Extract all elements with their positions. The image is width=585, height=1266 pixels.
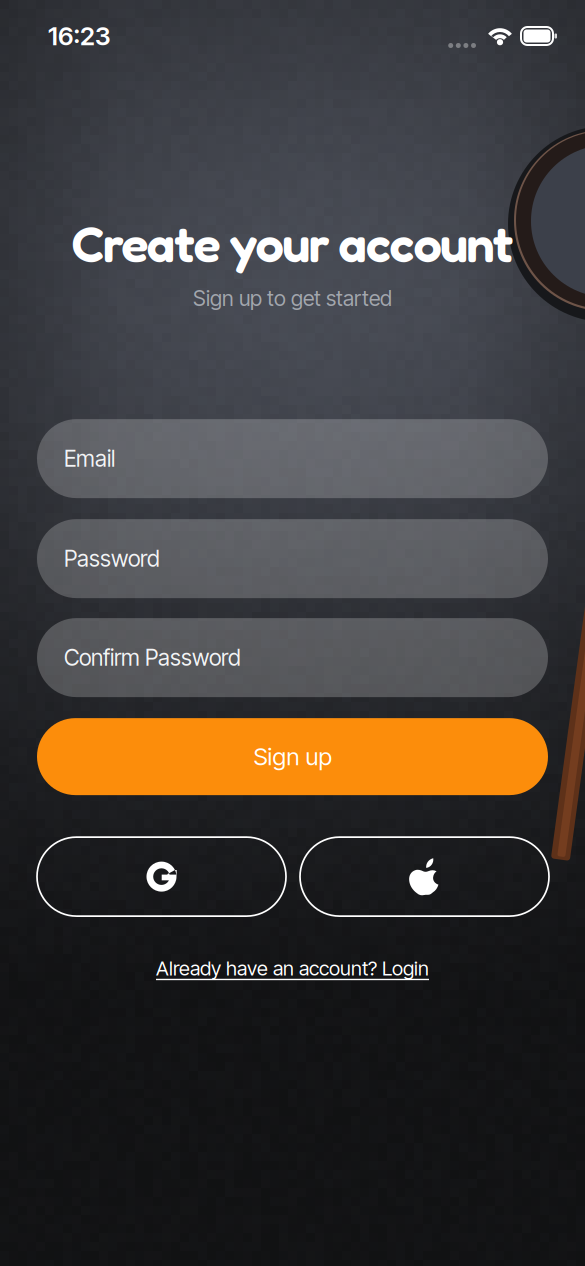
button[interactable]: Confirm Password [37, 618, 548, 697]
staticText: Sign up [253, 742, 331, 771]
staticText: Create your account [71, 213, 514, 274]
staticText: 16:23 [48, 21, 111, 51]
staticText: Sign up to get started [193, 285, 392, 311]
button[interactable]: Sign up [37, 718, 548, 795]
button[interactable]: Sign up with Google [37, 837, 286, 916]
staticText: Email [64, 445, 115, 472]
staticText: Already have an account? Login [156, 956, 429, 980]
staticText: Confirm Password [64, 644, 241, 671]
button[interactable]: Already have an account? Login [0, 956, 585, 980]
button[interactable]: Email [37, 419, 548, 498]
button[interactable]: Password [37, 519, 548, 598]
button[interactable]: Sign up with Apple [300, 837, 549, 916]
staticText: Password [64, 545, 160, 572]
